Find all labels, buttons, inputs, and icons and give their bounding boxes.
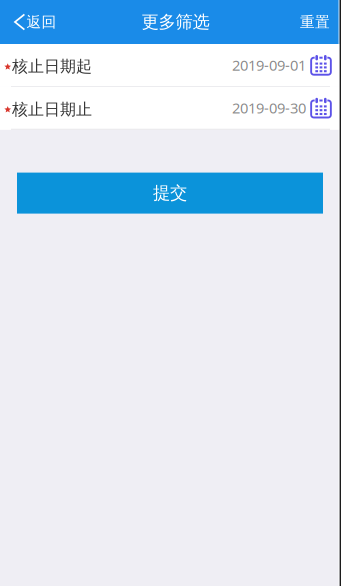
staticText: 核止日期起 [12, 57, 92, 76]
staticText: 核止日期止 [12, 99, 92, 119]
staticText: 2019-09-30 [232, 98, 306, 118]
button[interactable]: 提交 [17, 173, 323, 214]
staticText: 重置 [300, 13, 330, 31]
staticText: 更多筛选 [141, 11, 209, 33]
button[interactable]: 核止日期止 [0, 87, 341, 130]
button[interactable]: 重置 [286, 0, 341, 44]
button[interactable]: 返回 [0, 0, 68, 44]
staticText: 返回 [26, 13, 56, 31]
staticText: 提交 [153, 182, 187, 204]
staticText: 2019-09-01 [232, 55, 306, 75]
button[interactable]: 选择日期 [306, 54, 332, 76]
button[interactable]: 选择日期 [306, 97, 332, 119]
button[interactable]: 核止日期起 [0, 44, 341, 87]
